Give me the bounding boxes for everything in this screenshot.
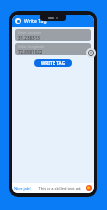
button[interactable]: Browser [86, 185, 92, 191]
button[interactable]: WRITE TAG [34, 59, 72, 67]
staticText: Nice job! [14, 186, 31, 191]
staticText: 31.238313 [18, 35, 40, 40]
staticText: Write Tag [24, 18, 47, 25]
button[interactable]: Enter Longitude [15, 43, 91, 55]
button[interactable]: Settings [86, 48, 96, 58]
staticText: This is a skilled text ad. [34, 186, 86, 191]
staticText: 72.8981022 [18, 49, 43, 54]
staticText: Enter Longitude [18, 44, 45, 49]
staticText: Enter Latitude [18, 30, 42, 35]
staticText: WRITE TAG [41, 60, 65, 66]
button[interactable]: Enter Latitude [15, 29, 91, 41]
button[interactable]: App icon [15, 18, 21, 24]
